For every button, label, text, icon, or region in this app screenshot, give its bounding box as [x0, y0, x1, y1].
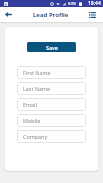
- staticText: Email: [23, 101, 37, 108]
- staticText: 18:44: [88, 0, 101, 7]
- button[interactable]: First Name: [17, 66, 86, 79]
- staticText: Save: [46, 44, 58, 51]
- button[interactable]: Mobile: [17, 114, 86, 127]
- staticText: Company: [23, 133, 48, 140]
- staticText: Last Name: [23, 85, 50, 92]
- button[interactable]: Last Name: [17, 82, 86, 95]
- button[interactable]: Save: [27, 42, 76, 52]
- button[interactable]: Company: [17, 130, 86, 143]
- button[interactable]: Back: [0, 7, 16, 22]
- button[interactable]: Menu: [87, 7, 98, 22]
- staticText: Lead Profile: [33, 11, 69, 19]
- staticText: Mobile: [23, 117, 41, 124]
- staticText: First Name: [23, 69, 51, 76]
- button[interactable]: Email: [17, 98, 86, 111]
- staticText: 63%: [68, 1, 77, 7]
